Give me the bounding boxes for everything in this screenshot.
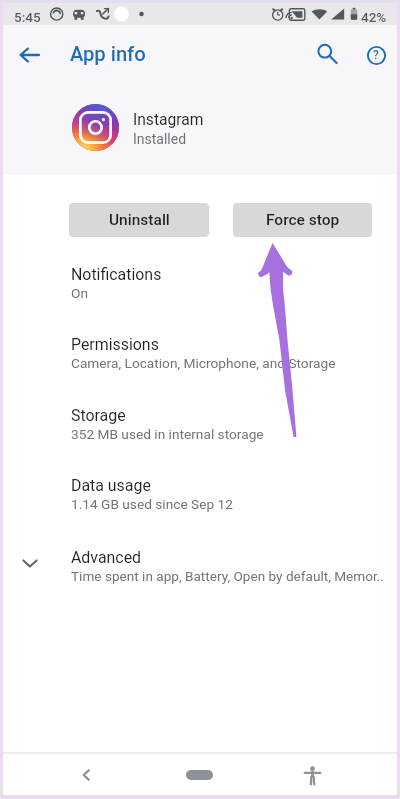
staticText: Data usage [71,476,151,495]
staticText: On [71,285,88,301]
staticText: Force stop [266,211,340,229]
staticText: ? [373,48,379,62]
staticText: Uninstall [109,211,170,229]
button[interactable]: Uninstall [69,203,209,237]
staticText: 42% [361,9,387,25]
button[interactable]: Home [170,755,229,795]
staticText: App info [70,42,146,66]
staticText: 5:45 [14,9,41,25]
button[interactable]: Accessibility [292,755,332,795]
staticText: Camera, Location, Microphone, and Storag… [71,355,336,371]
button[interactable]: Search [307,34,348,75]
button[interactable]: Data usage [0,467,400,527]
staticText: Installed [133,131,187,147]
button[interactable]: Advanced [0,539,400,599]
staticText: Instagram [133,111,204,129]
button[interactable]: Force stop [233,203,372,237]
staticText: Storage [71,406,126,425]
staticText: 1.14 GB used since Sep 12 [71,496,233,512]
staticText: Permissions [71,335,159,354]
button[interactable]: Back [66,755,106,795]
button[interactable]: Permissions [0,326,400,386]
button[interactable]: Help [356,35,396,75]
staticText: Time spent in app, Battery, Open by defa… [71,568,384,584]
staticText: Advanced [71,548,142,567]
button[interactable]: Notifications [0,256,400,316]
staticText: 352 MB used in internal storage [71,426,264,442]
button[interactable]: Back [10,36,48,74]
button[interactable]: Storage [0,397,400,457]
staticText: Notifications [71,265,162,284]
